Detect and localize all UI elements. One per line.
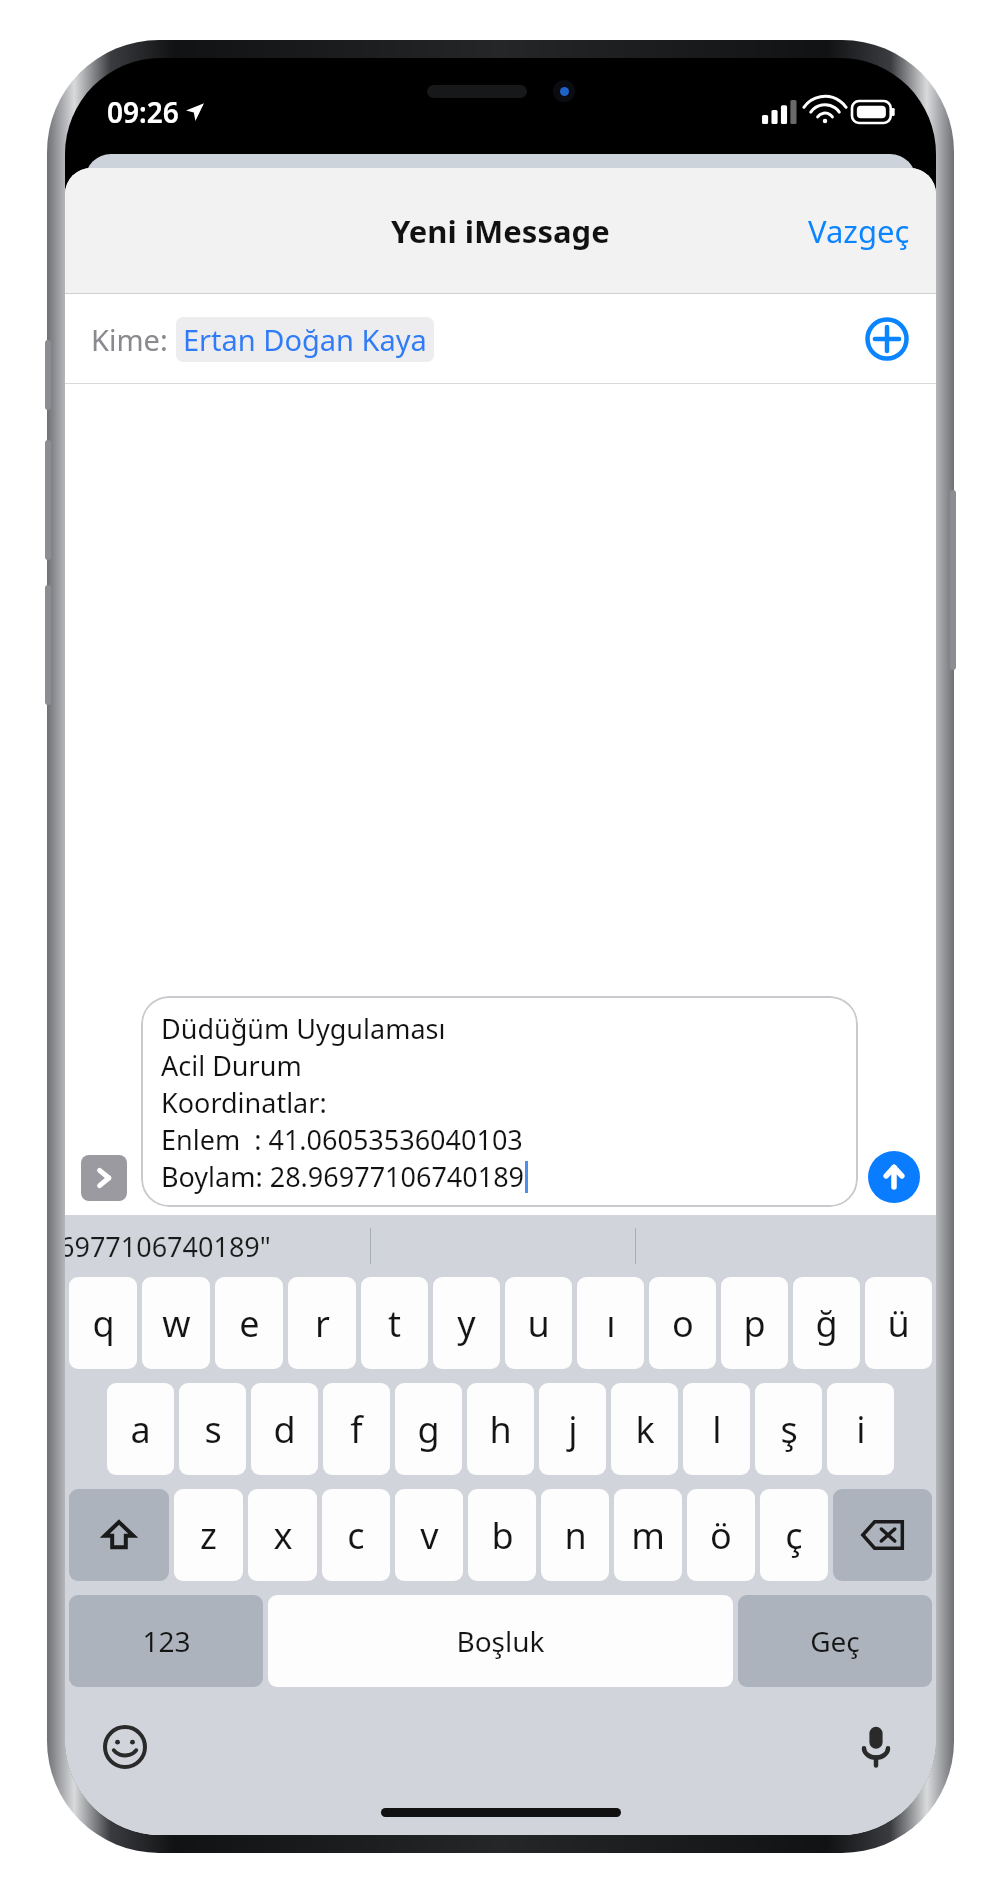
button[interactable]: v xyxy=(395,1489,463,1581)
staticText: f xyxy=(350,1405,363,1454)
button[interactable]: h xyxy=(467,1383,534,1475)
button[interactable]: x xyxy=(248,1489,317,1581)
staticText: v xyxy=(420,1511,439,1560)
button[interactable]: f xyxy=(323,1383,390,1475)
staticText: i xyxy=(856,1405,866,1454)
staticText: z xyxy=(200,1511,217,1560)
button[interactable]: w xyxy=(142,1277,210,1369)
button[interactable]: b xyxy=(468,1489,536,1581)
staticText: Ertan Doğan Kaya xyxy=(183,320,427,359)
button[interactable]: r xyxy=(288,1277,356,1369)
staticText: Boylam: 28.96977106740189 xyxy=(161,1158,525,1195)
button[interactable]: Geç xyxy=(738,1595,932,1687)
staticText: Enlem : 41.06053536040103 xyxy=(161,1121,523,1158)
staticText: u xyxy=(527,1299,550,1348)
button[interactable]: k xyxy=(611,1383,678,1475)
button[interactable]: ş xyxy=(755,1383,822,1475)
staticText: ç xyxy=(785,1511,803,1560)
button[interactable]: Shift xyxy=(69,1489,169,1581)
staticText: n xyxy=(564,1511,587,1560)
staticText: b xyxy=(491,1511,514,1560)
button[interactable]: Düdüğüm Uygulaması xyxy=(141,996,858,1207)
button[interactable]: Ertan Doğan Kaya xyxy=(176,317,434,362)
button[interactable]: g xyxy=(395,1383,462,1475)
button[interactable]: i xyxy=(827,1383,894,1475)
staticText: e xyxy=(239,1299,260,1348)
button[interactable]: Boşluk xyxy=(268,1595,733,1687)
staticText: ğ xyxy=(815,1299,838,1348)
staticText: Yeni iMessage xyxy=(391,210,610,252)
button[interactable]: a xyxy=(107,1383,174,1475)
button[interactable]: j xyxy=(539,1383,606,1475)
staticText: Koordinatlar: xyxy=(161,1084,327,1121)
staticText: x xyxy=(273,1511,293,1560)
staticText: t xyxy=(388,1299,401,1348)
button[interactable]: m xyxy=(614,1489,682,1581)
button[interactable]: Gönder xyxy=(868,1151,920,1203)
staticText: ü xyxy=(887,1299,910,1348)
button[interactable]: z xyxy=(174,1489,243,1581)
staticText: s xyxy=(204,1405,222,1454)
staticText: l xyxy=(712,1405,722,1454)
staticText: o xyxy=(672,1299,694,1348)
staticText: ö xyxy=(710,1511,732,1560)
button[interactable]: Kişi ekle xyxy=(858,310,916,368)
button[interactable]: Emoji xyxy=(99,1721,151,1773)
button[interactable]: e xyxy=(215,1277,283,1369)
button[interactable]: ü xyxy=(865,1277,932,1369)
staticText: Vazgeç xyxy=(808,210,910,252)
button[interactable]: ı xyxy=(577,1277,644,1369)
button[interactable]: Uygulamalar xyxy=(81,1155,127,1201)
staticText: 6977106740189" xyxy=(65,1228,271,1265)
staticText: g xyxy=(417,1405,440,1454)
button[interactable]: c xyxy=(322,1489,390,1581)
staticText: ı xyxy=(606,1299,616,1348)
button[interactable]: l xyxy=(683,1383,750,1475)
button[interactable]: 123 xyxy=(69,1595,263,1687)
staticText: 123 xyxy=(142,1622,191,1660)
staticText: d xyxy=(273,1405,296,1454)
staticText: Boşluk xyxy=(456,1622,545,1660)
staticText: p xyxy=(743,1299,766,1348)
button[interactable]: o xyxy=(649,1277,716,1369)
staticText: y xyxy=(457,1299,476,1348)
button[interactable]: ö xyxy=(687,1489,755,1581)
button[interactable]: Sil xyxy=(833,1489,932,1581)
button[interactable]: ç xyxy=(760,1489,828,1581)
button[interactable]: s xyxy=(179,1383,246,1475)
staticText: ş xyxy=(780,1405,798,1454)
button[interactable]: Dikte xyxy=(850,1721,902,1773)
staticText: Düdüğüm Uygulaması xyxy=(161,1010,446,1047)
button[interactable]: Vazgeç xyxy=(782,196,936,266)
button[interactable]: u xyxy=(505,1277,572,1369)
button[interactable]: d xyxy=(251,1383,318,1475)
staticText: h xyxy=(489,1405,512,1454)
button[interactable]: y xyxy=(433,1277,500,1369)
staticText: 09:26 xyxy=(107,93,179,131)
button[interactable]: n xyxy=(541,1489,609,1581)
button[interactable]: p xyxy=(721,1277,788,1369)
staticText: q xyxy=(92,1299,115,1348)
staticText: Acil Durum xyxy=(161,1047,302,1084)
staticText: j xyxy=(568,1405,578,1454)
button[interactable]: q xyxy=(69,1277,137,1369)
staticText: m xyxy=(631,1511,665,1560)
staticText: c xyxy=(347,1511,365,1560)
staticText: k xyxy=(635,1405,655,1454)
button[interactable]: t xyxy=(361,1277,428,1369)
staticText: w xyxy=(162,1299,191,1348)
button[interactable]: ğ xyxy=(793,1277,860,1369)
staticText: Geç xyxy=(810,1622,860,1660)
staticText: r xyxy=(315,1299,330,1348)
staticText: Kime: xyxy=(91,320,168,359)
staticText: a xyxy=(130,1405,151,1454)
